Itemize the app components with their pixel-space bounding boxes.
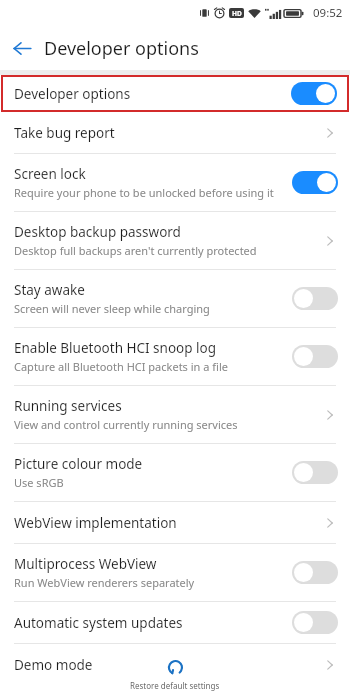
button[interactable]: Multiprocess WebView bbox=[0, 544, 350, 601]
button[interactable]: Desktop backup password bbox=[0, 212, 350, 269]
button[interactable]: Automatic system updates bbox=[0, 602, 350, 643]
staticText: View and control currently running servi… bbox=[14, 417, 238, 432]
staticText: Screen will never sleep while charging bbox=[14, 301, 210, 316]
button[interactable]: Stay awake bbox=[0, 270, 350, 327]
staticText: HD bbox=[232, 9, 242, 18]
button[interactable]: Picture colour mode bbox=[0, 444, 350, 501]
button[interactable]: Take bug report bbox=[0, 112, 350, 153]
button[interactable]: WebView implementation bbox=[0, 502, 350, 543]
staticText: Take bug report bbox=[14, 124, 115, 142]
staticText: Desktop full backups aren't currently pr… bbox=[14, 243, 257, 258]
staticText: Running services bbox=[14, 397, 122, 415]
button[interactable]: Developer options bbox=[1, 75, 349, 112]
staticText: Enable Bluetooth HCI snoop log bbox=[14, 339, 217, 357]
staticText: Stay awake bbox=[14, 281, 85, 299]
staticText: Desktop backup password bbox=[14, 223, 181, 241]
staticText: Multiprocess WebView bbox=[14, 555, 157, 573]
staticText: Picture colour mode bbox=[14, 455, 143, 473]
staticText: 09:52 bbox=[313, 5, 343, 21]
button[interactable]: Screen lock bbox=[0, 154, 350, 211]
staticText: Automatic system updates bbox=[14, 614, 183, 632]
staticText: Run WebView renderers separately bbox=[14, 575, 195, 590]
staticText: Developer options bbox=[14, 85, 131, 103]
staticText: Screen lock bbox=[14, 165, 86, 183]
button[interactable]: Demo mode bbox=[0, 644, 350, 685]
staticText: Use sRGB bbox=[14, 475, 64, 490]
staticText: Capture all Bluetooth HCI packets in a f… bbox=[14, 359, 228, 374]
staticText: Require your phone to be unlocked before… bbox=[14, 185, 274, 200]
button[interactable]: Back bbox=[0, 26, 44, 70]
staticText: Restore default settings bbox=[130, 680, 220, 691]
button[interactable]: Running services bbox=[0, 386, 350, 443]
button[interactable]: Enable Bluetooth HCI snoop log bbox=[0, 328, 350, 385]
button[interactable]: Restore default settings bbox=[114, 649, 236, 699]
staticText: WebView implementation bbox=[14, 514, 177, 532]
staticText: Demo mode bbox=[14, 656, 93, 674]
staticText: Developer options bbox=[44, 36, 199, 61]
